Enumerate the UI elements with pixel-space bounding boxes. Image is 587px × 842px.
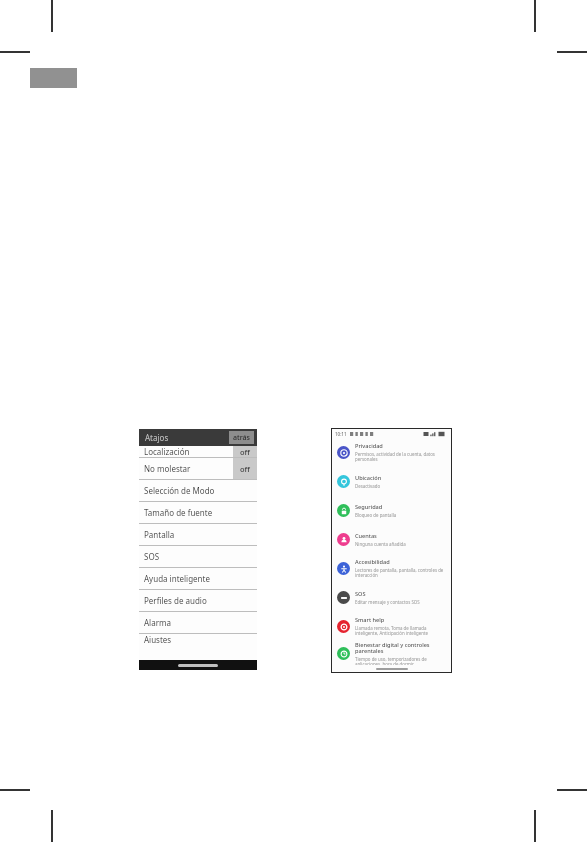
- staticText: Llamada remota, Toma de llamada intelige…: [355, 625, 446, 637]
- staticText: Pantalla: [144, 529, 175, 540]
- staticText: 10:11: [335, 431, 347, 437]
- staticText: Tiempo de uso, temporizadores de aplicac…: [355, 656, 446, 665]
- staticText: Desactivado: [355, 483, 381, 489]
- staticText: SOS: [355, 590, 366, 598]
- button[interactable]: Pantalla: [139, 523, 257, 545]
- staticText: Bloqueo de pantalla: [355, 512, 397, 518]
- staticText: Ayuda inteligente: [144, 573, 210, 584]
- button[interactable]: Ayuda inteligente: [139, 567, 257, 589]
- staticText: Localización: [144, 446, 190, 457]
- button[interactable]: Accesibilidad: [332, 554, 451, 583]
- staticText: off: [240, 464, 250, 474]
- button[interactable]: Alarma: [139, 611, 257, 633]
- button[interactable]: Seguridad: [332, 496, 451, 525]
- staticText: Cuentas: [355, 532, 377, 540]
- button[interactable]: No molestar: [139, 457, 257, 479]
- button[interactable]: Privacidad: [332, 438, 451, 467]
- staticText: Smart help: [355, 616, 385, 624]
- button[interactable]: Smart help: [332, 612, 451, 641]
- button[interactable]: Cuentas: [332, 525, 451, 554]
- staticText: Bienestar digital y controles parentales: [355, 641, 446, 655]
- staticText: Lectores de pantalla, pantalla, controle…: [355, 567, 446, 579]
- button[interactable]: Tamaño de fuente: [139, 501, 257, 523]
- button[interactable]: atrás: [229, 431, 254, 444]
- staticText: Ninguna cuenta añadida: [355, 541, 406, 547]
- staticText: off: [240, 447, 250, 457]
- button[interactable]: Perfiles de audio: [139, 589, 257, 611]
- staticText: Tamaño de fuente: [144, 507, 213, 518]
- staticText: Editar mensaje y contactos SOS: [355, 599, 420, 605]
- staticText: Privacidad: [355, 442, 383, 450]
- button[interactable]: SOS: [139, 545, 257, 567]
- staticText: Seguridad: [355, 503, 383, 511]
- button[interactable]: Localización: [139, 446, 257, 457]
- button[interactable]: Ajustes: [139, 633, 257, 643]
- staticText: atrás: [233, 433, 250, 443]
- staticText: Selección de Modo: [144, 485, 215, 496]
- staticText: Accesibilidad: [355, 558, 390, 566]
- staticText: Ubicación: [355, 474, 382, 482]
- staticText: Atajos: [145, 432, 169, 443]
- staticText: Perfiles de audio: [144, 595, 207, 606]
- button[interactable]: SOS: [332, 583, 451, 612]
- staticText: Alarma: [144, 617, 171, 628]
- button[interactable]: Selección de Modo: [139, 479, 257, 501]
- button[interactable]: Ubicación: [332, 467, 451, 496]
- staticText: Ajustes: [144, 634, 172, 643]
- staticText: No molestar: [144, 463, 191, 474]
- staticText: SOS: [144, 551, 160, 562]
- staticText: Permisos, actividad de la cuenta, datos …: [355, 451, 446, 463]
- button[interactable]: Bienestar digital y controles parentales: [332, 641, 451, 665]
